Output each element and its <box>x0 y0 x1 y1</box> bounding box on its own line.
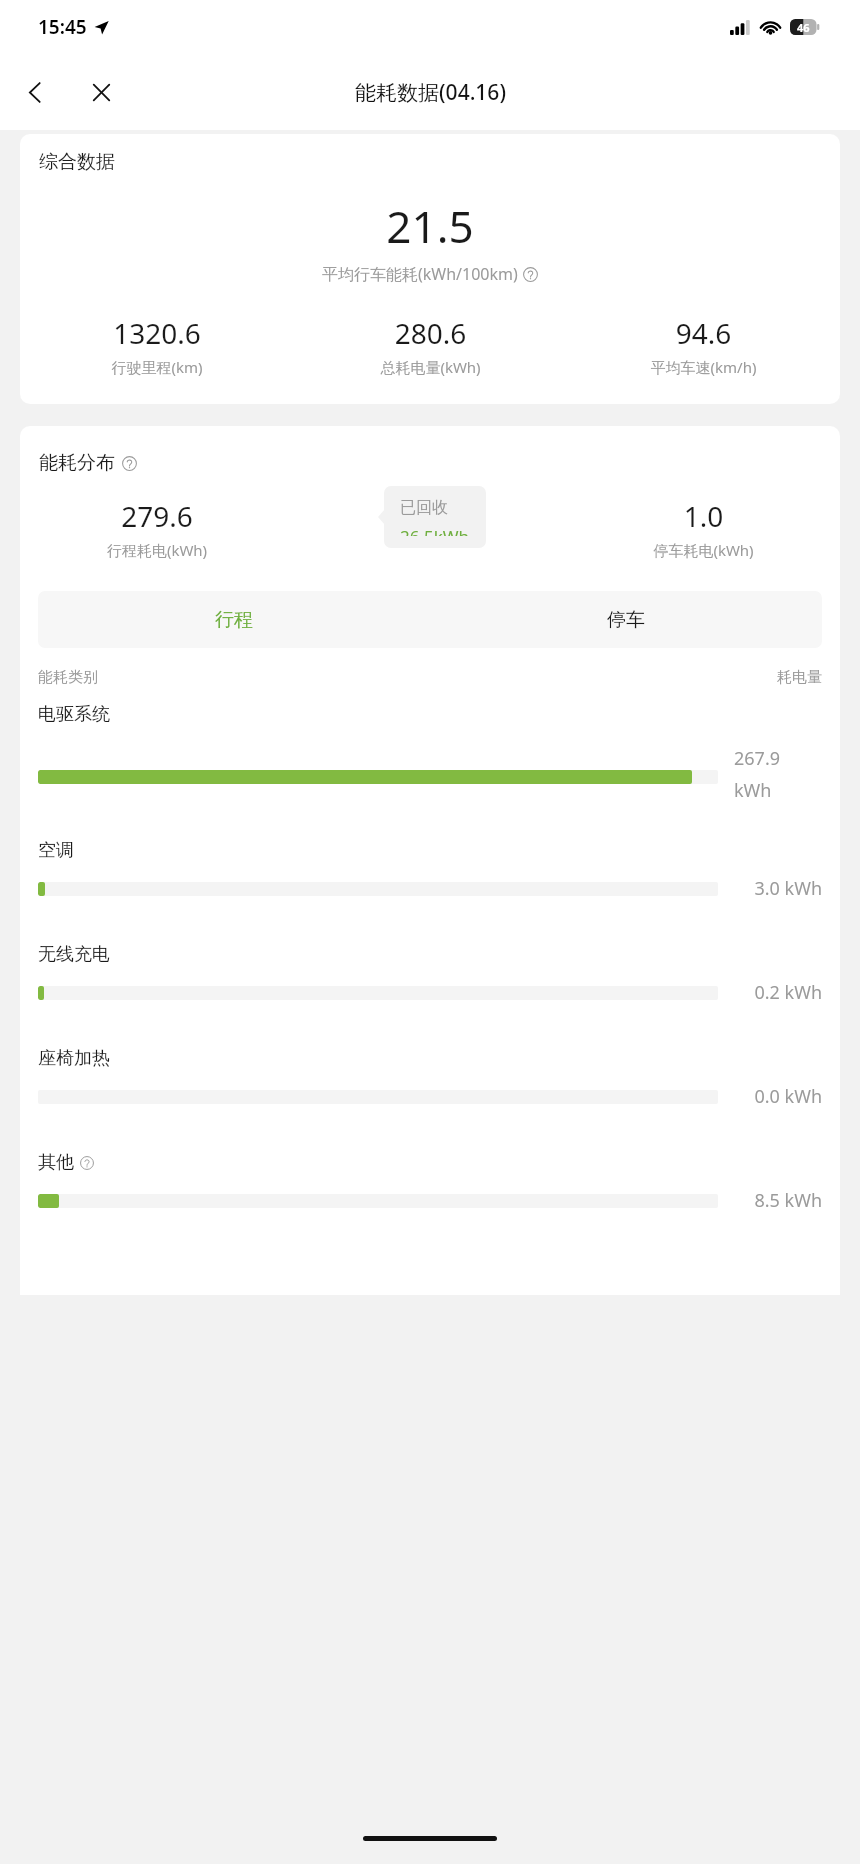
staticText: 46 <box>797 20 810 35</box>
button[interactable]: Close <box>78 69 124 115</box>
button[interactable]: Back <box>12 69 58 115</box>
staticText: 停车 <box>607 608 645 632</box>
staticText: 280.6 <box>294 314 567 352</box>
staticText: 平均行车能耗(kWh/100km) <box>322 263 518 285</box>
staticText: 1320.6 <box>20 314 294 352</box>
staticText: 总耗电量(kWh) <box>294 357 567 377</box>
staticText: 26.5kWh <box>400 525 470 536</box>
staticText: 279.6 <box>20 497 294 535</box>
staticText: 行程 <box>215 608 253 632</box>
staticText: 空调 <box>38 839 74 862</box>
staticText: 15:45 <box>38 14 87 40</box>
button[interactable]: 行程 <box>38 591 430 648</box>
staticText: 其他 <box>38 1151 74 1174</box>
staticText: 0.0 kWh <box>734 1084 822 1109</box>
staticText: 8.5 kWh <box>734 1188 822 1213</box>
staticText: 平均车速(km/h) <box>567 357 840 377</box>
button[interactable]: 停车 <box>430 591 822 648</box>
staticText: 行程耗电(kWh) <box>20 540 294 559</box>
staticText: 能耗类别 <box>38 668 98 687</box>
staticText: 行驶里程(km) <box>20 357 294 377</box>
staticText: 3.0 kWh <box>734 876 822 901</box>
staticText: 1.0 <box>567 497 840 535</box>
staticText: 已回收 <box>400 498 448 518</box>
staticText: 21.5 <box>20 196 840 256</box>
staticText: 无线充电 <box>38 943 110 966</box>
staticText: 能耗数据(04.16) <box>355 78 506 107</box>
staticText: 能耗分布 <box>39 451 115 475</box>
staticText: 停车耗电(kWh) <box>567 540 840 559</box>
staticText: kWh <box>734 778 772 803</box>
staticText: 耗电量 <box>777 668 822 687</box>
staticText: 综合数据 <box>39 150 115 174</box>
staticText: 电驱系统 <box>38 703 110 726</box>
staticText: 267.9 <box>734 746 781 771</box>
staticText: 座椅加热 <box>38 1047 110 1070</box>
staticText: 94.6 <box>567 314 840 352</box>
staticText: 0.2 kWh <box>734 980 822 1005</box>
